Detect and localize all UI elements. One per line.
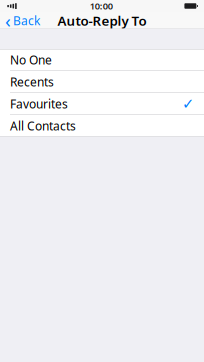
staticText: ‹ <box>5 8 11 33</box>
staticText: No One <box>10 52 52 68</box>
button[interactable]: ‹ <box>0 6 45 35</box>
staticText: 10:00 <box>90 0 113 12</box>
staticText: ✓ <box>182 95 194 112</box>
button[interactable]: All Contacts <box>0 115 204 136</box>
staticText: Recents <box>10 74 54 90</box>
button[interactable]: No One <box>0 49 204 71</box>
staticText: Favourites <box>10 96 68 112</box>
button[interactable]: Recents <box>0 71 204 93</box>
button[interactable]: Favourites <box>0 93 204 115</box>
staticText: All Contacts <box>10 118 76 134</box>
staticText: Back <box>13 12 40 28</box>
staticText: Auto-Reply To <box>57 12 146 29</box>
